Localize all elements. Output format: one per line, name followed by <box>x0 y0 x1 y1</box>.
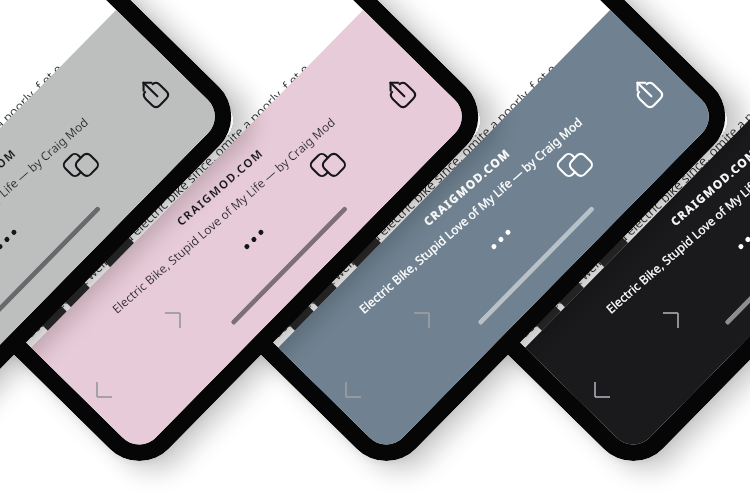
button[interactable]: Share <box>133 72 174 113</box>
button[interactable]: Tabs <box>62 146 100 184</box>
button[interactable]: CRAIGMOD.COM <box>266 7 656 402</box>
staticText: designed but well loved electric bike si… <box>0 0 124 351</box>
staticText: CRAIGMOD.COM <box>0 13 145 362</box>
staticText: Electric Bike, Stupid Love of My Life — … <box>540 36 750 394</box>
staticText: designed but well loved electric bike si… <box>20 0 371 351</box>
staticText: CRAIGMOD.COM <box>542 13 750 362</box>
staticText: Electric Bike, Stupid Love of My Life — … <box>46 36 400 394</box>
button[interactable]: More options <box>237 223 270 256</box>
staticText: CRAIGMOD.COM <box>48 13 392 362</box>
staticText: Electric Bike, Stupid Love of My Life — … <box>293 36 647 394</box>
button[interactable]: CRAIGMOD.COM <box>19 7 409 402</box>
button[interactable]: Tabs <box>556 146 594 184</box>
button[interactable]: More options <box>731 223 750 256</box>
button[interactable]: Tabs <box>309 146 347 184</box>
button[interactable]: CRAIGMOD.COM <box>513 7 750 402</box>
button[interactable]: More options <box>0 223 23 256</box>
button[interactable]: More options <box>484 223 517 256</box>
button[interactable]: Share <box>380 72 421 113</box>
staticText: CRAIGMOD.COM <box>295 13 639 362</box>
staticText: designed but well loved electric bike si… <box>514 0 750 351</box>
staticText: Electric Bike, Stupid Love of My Life — … <box>0 36 153 394</box>
button[interactable]: CRAIGMOD.COM <box>0 7 162 402</box>
button[interactable]: Share <box>627 72 668 113</box>
staticText: designed but well loved electric bike si… <box>267 0 618 351</box>
